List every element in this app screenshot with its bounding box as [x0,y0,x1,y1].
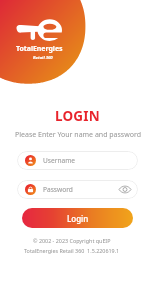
other: Show password [119,186,131,193]
staticText: TotalEnergies [16,44,63,54]
button[interactable]: Username [17,151,138,170]
staticText: Username [43,156,76,165]
staticText: © 2002 - 2023 Copyright quEIP [33,237,111,244]
staticText: Retail 360 [33,55,53,61]
staticText: LOGIN [55,107,100,125]
staticText: TotalEnergies Retail 360 1.5.220619.1 [24,247,120,254]
staticText: Login [67,213,89,224]
button[interactable]: Password [17,180,138,199]
staticText: Please Enter Your name and password [15,130,141,140]
button[interactable]: Login [22,208,133,228]
staticText: Password [43,185,73,194]
